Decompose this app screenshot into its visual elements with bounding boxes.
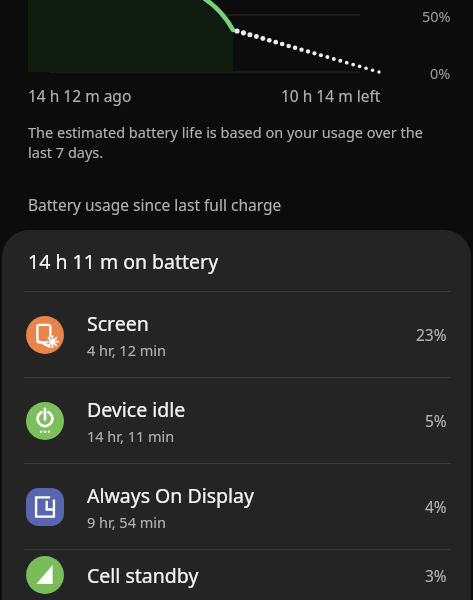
staticText: 10 h 14 m left [281, 85, 381, 106]
staticText: Device idle [87, 396, 186, 423]
staticText: 3% [425, 565, 447, 586]
staticText: 50% [422, 6, 451, 26]
staticText: 14 h 11 m on battery [28, 248, 219, 275]
staticText: Always On Display [87, 482, 254, 509]
staticText: Cell standby [87, 562, 199, 589]
other: Screen battery usage [26, 316, 64, 354]
staticText: 9 hr, 54 min [87, 512, 166, 532]
staticText: 5% [425, 410, 447, 431]
staticText: 4 hr, 12 min [87, 340, 166, 360]
button[interactable]: Device idle battery usage [2, 378, 471, 463]
button[interactable]: Screen battery usage [2, 292, 471, 377]
other: Always On Display battery usage [26, 488, 64, 526]
staticText: The estimated battery life is based on y… [28, 122, 423, 163]
staticText: 23% [416, 324, 447, 345]
other: Cell standby battery usage [26, 556, 64, 594]
button[interactable]: Always On Display battery usage [2, 464, 471, 549]
staticText: 0% [430, 63, 451, 80]
button[interactable]: Cell standby battery usage [2, 550, 471, 600]
staticText: 14 hr, 11 min [87, 426, 175, 446]
staticText: 4% [425, 496, 447, 517]
other: Device idle battery usage [26, 402, 64, 440]
staticText: Screen [87, 310, 149, 337]
staticText: Battery usage since last full charge [28, 194, 282, 215]
staticText: 14 h 12 m ago [28, 85, 132, 106]
